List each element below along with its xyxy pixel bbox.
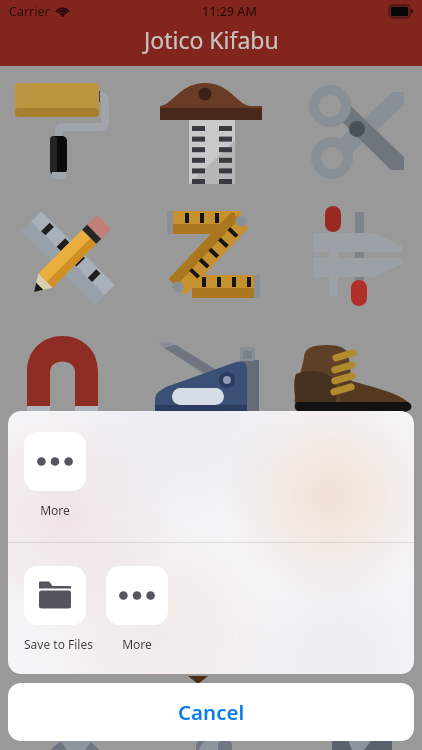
staticText: More [122,636,152,652]
staticText: More [40,502,70,518]
button[interactable]: Tool [281,66,422,196]
staticText: Cancel [178,698,245,726]
button[interactable]: Save to Files [24,566,86,664]
button[interactable]: Tool [140,66,281,196]
staticText: 11:29 AM [202,3,257,20]
button[interactable]: Cancel [8,683,414,741]
button[interactable]: Tool [140,326,281,456]
staticText: Carrier [9,3,50,20]
button[interactable]: Tool [0,66,140,196]
staticText: Jotico Kifabu [144,24,279,55]
button[interactable]: More [24,432,86,530]
button[interactable]: Tool [281,326,422,456]
button[interactable]: More [106,566,168,664]
button[interactable]: Tool [0,196,140,326]
button[interactable]: Tool [281,196,422,326]
button[interactable]: Tool [140,196,281,326]
staticText: Save to Files [24,636,86,652]
button[interactable]: Tool [0,326,140,456]
